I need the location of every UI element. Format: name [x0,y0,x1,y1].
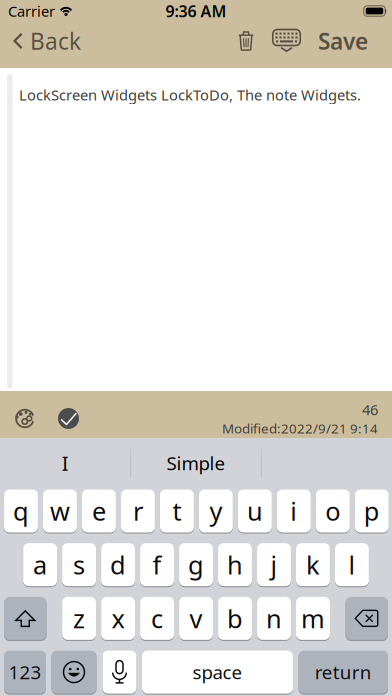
button[interactable]: g [179,543,213,586]
button[interactable]: b [218,597,252,640]
button[interactable]: space [142,651,293,694]
staticText: x [112,602,125,635]
staticText: t [172,494,181,528]
staticText: u [247,494,263,528]
staticText: space [192,660,242,684]
staticText: LockScreen Widgets LockToDo, The note Wi… [19,85,361,104]
button[interactable]: f [140,543,174,586]
staticText: Back [30,26,81,56]
staticText: q [13,494,29,528]
staticText: o [325,494,340,528]
staticText: v [189,602,202,635]
staticText: l [348,548,355,581]
button[interactable] [13,408,37,428]
button[interactable]: l [335,543,369,586]
staticText: p [364,494,380,528]
staticText: g [188,548,204,581]
button[interactable]: j [257,543,291,586]
staticText: b [227,602,243,635]
button[interactable]: z [62,597,96,640]
staticText: 123 [8,660,41,684]
staticText: j [270,548,277,581]
staticText: h [227,548,243,581]
staticText: e [92,494,106,528]
button[interactable]: t [160,489,194,532]
staticText: z [73,602,85,635]
button[interactable]: a [23,543,57,586]
button[interactable]: q [4,489,38,532]
button[interactable]: s [62,543,96,586]
button[interactable]: n [257,597,291,640]
button[interactable] [272,29,301,53]
staticText: f [152,548,161,581]
button[interactable] [51,651,96,694]
button[interactable]: p [355,489,389,532]
button[interactable]: Save [318,26,368,56]
staticText: c [151,602,163,635]
button[interactable] [345,597,388,640]
button[interactable]: w [43,489,77,532]
staticText: k [306,548,320,581]
staticText: Simple [166,451,225,475]
staticText: Modified:2022/9/21 9:14 [222,419,378,437]
staticText: Carrier [8,1,55,21]
button[interactable]: 123 [4,651,46,694]
button[interactable]: u [238,489,272,532]
button[interactable]: r [121,489,155,532]
button[interactable]: return [298,651,388,694]
button[interactable]: Back [13,26,81,56]
staticText: m [301,602,325,635]
button[interactable]: i [277,489,311,532]
button[interactable]: o [316,489,350,532]
button[interactable]: h [218,543,252,586]
button[interactable]: Simple [133,440,259,486]
button[interactable]: m [296,597,330,640]
staticText: r [133,494,143,528]
staticText: 9:36 AM [165,0,226,22]
button[interactable]: v [179,597,213,640]
button[interactable]: d [101,543,135,586]
staticText: d [110,548,126,581]
button[interactable]: k [296,543,330,586]
button[interactable]: y [199,489,233,532]
staticText: i [290,494,297,528]
staticText: Save [318,26,368,56]
button[interactable] [238,31,254,51]
staticText: 46 [362,400,378,419]
button[interactable]: e [82,489,116,532]
button[interactable] [56,406,81,431]
staticText: n [266,602,282,635]
staticText: I [62,450,69,476]
staticText: return [315,660,372,684]
button[interactable] [4,597,46,640]
staticText: s [73,548,85,581]
staticText: w [50,494,70,528]
button[interactable]: x [101,597,135,640]
staticText: y [209,494,222,528]
staticText: a [33,548,47,581]
button[interactable]: c [140,597,174,640]
button[interactable] [102,651,136,694]
button[interactable]: I [2,440,128,486]
